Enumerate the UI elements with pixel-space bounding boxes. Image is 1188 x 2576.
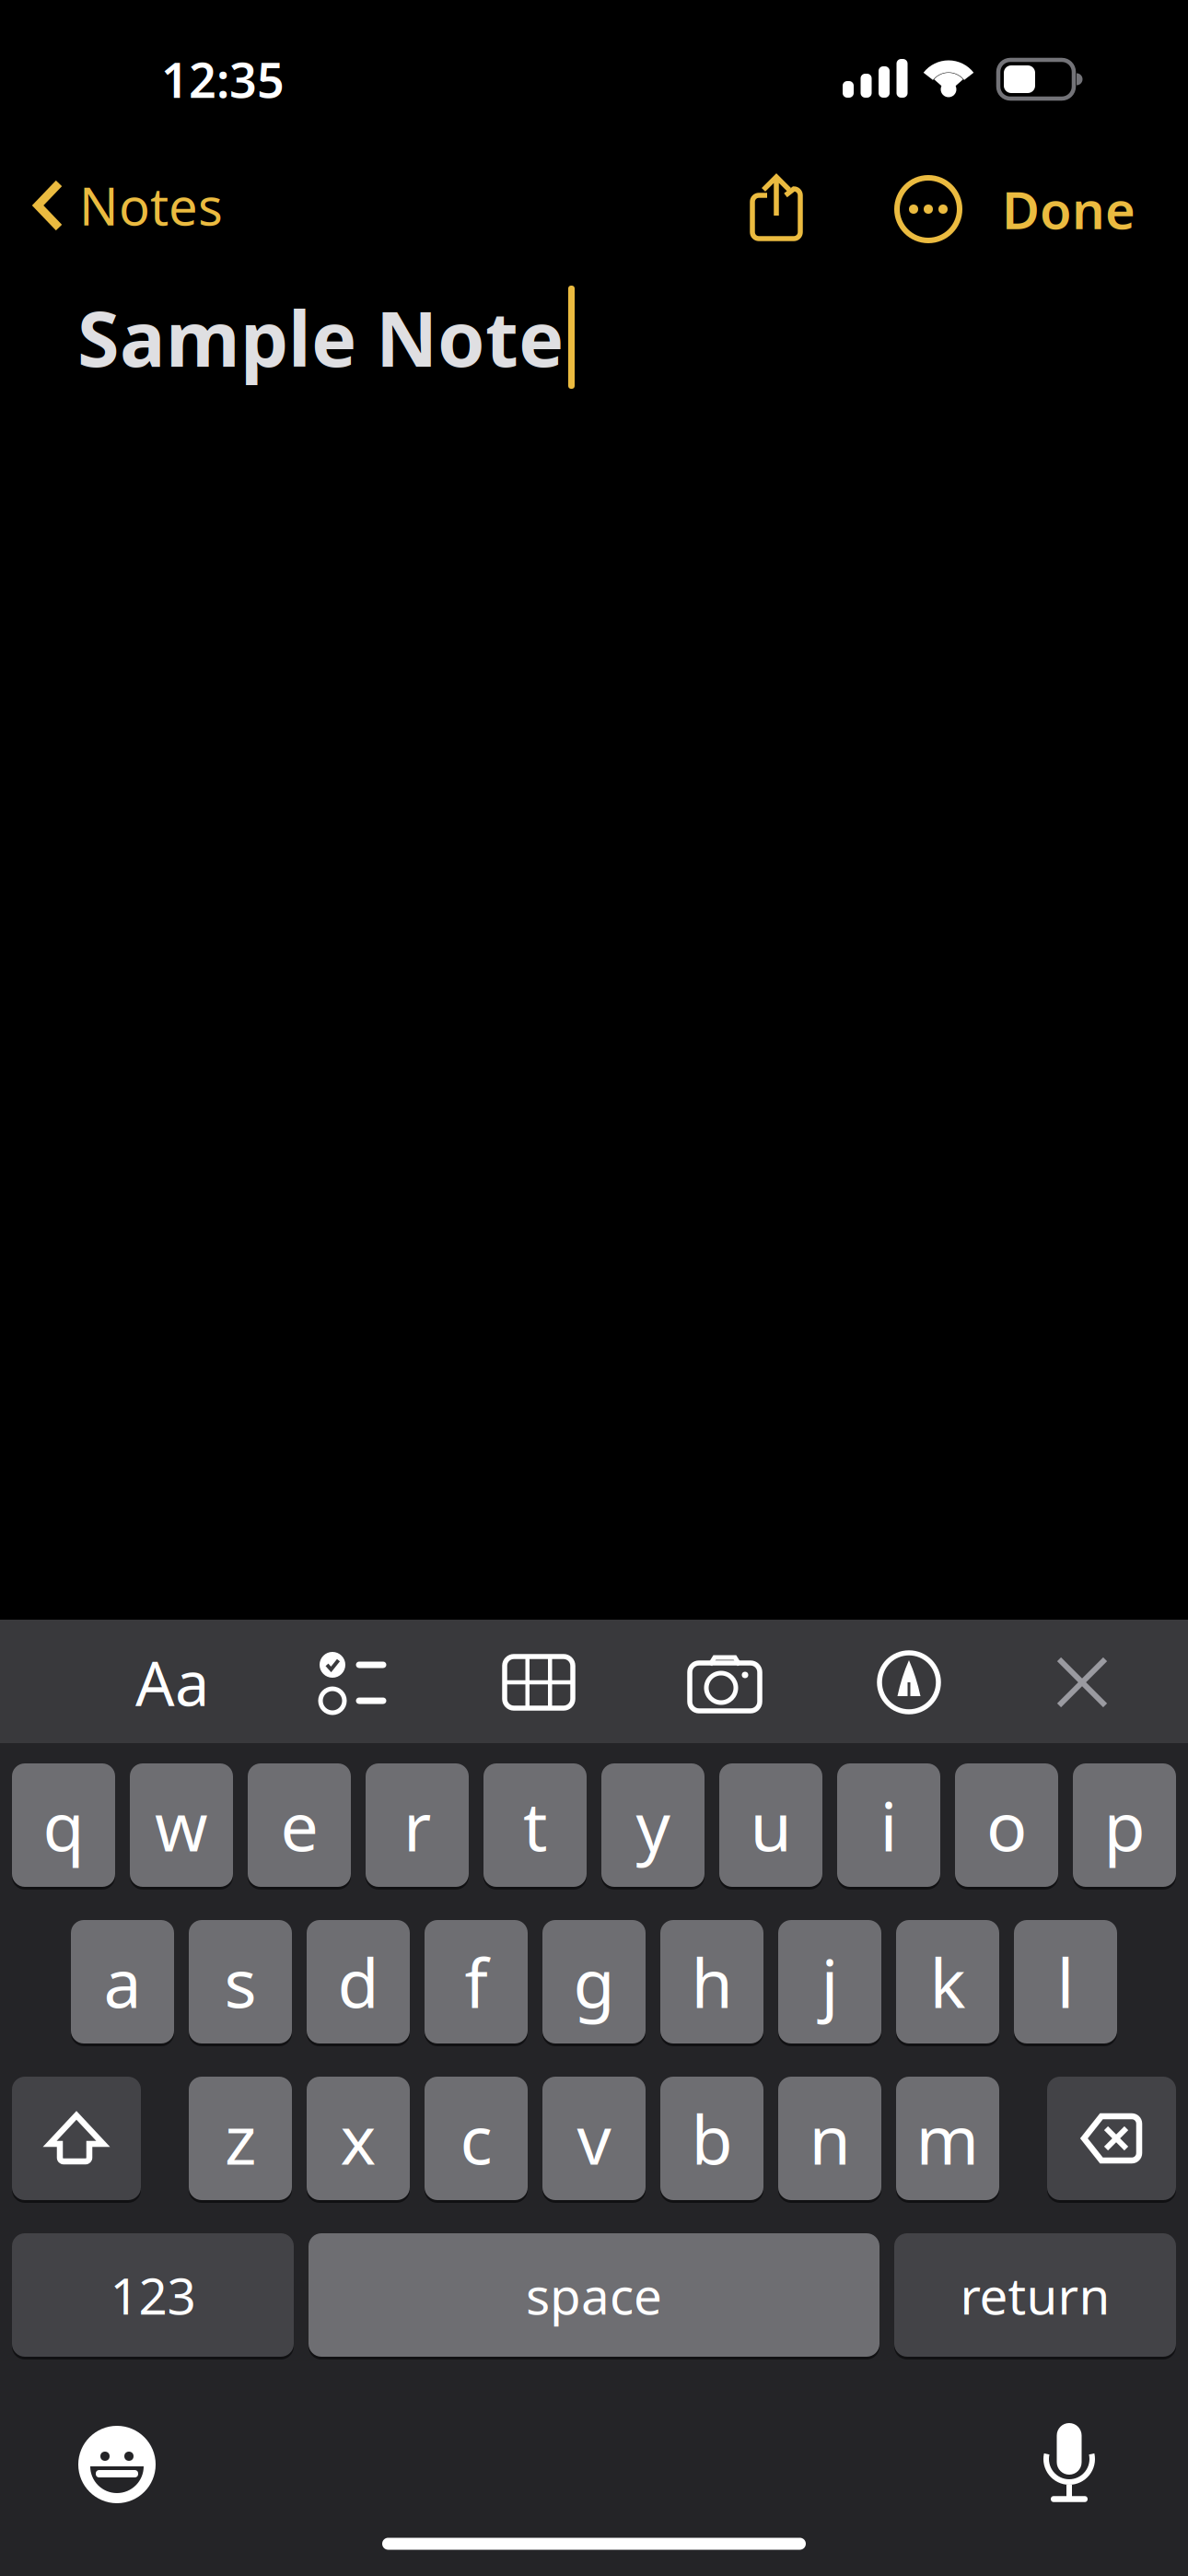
staticText: a [104,1937,141,2027]
button[interactable]: q [12,1762,115,1888]
button[interactable]: w [130,1762,233,1888]
button[interactable]: return [894,2232,1176,2358]
staticText: i [880,1780,897,1870]
button[interactable]: s [189,1919,292,2045]
staticText: q [43,1780,84,1870]
staticText: k [930,1937,966,2027]
staticText: b [691,2094,733,2183]
button[interactable]: Done [1002,176,1136,242]
staticText: o [986,1780,1027,1870]
staticText: l [1057,1937,1074,2027]
button[interactable]: x [307,2075,410,2201]
button[interactable]: Format [108,1621,237,1744]
button[interactable]: Delete [1047,2075,1176,2201]
staticText: 12:35 [161,47,285,111]
staticText: j [821,1937,839,2027]
staticText: space [526,2262,662,2328]
button[interactable]: Dictation [1042,2422,1097,2501]
button[interactable]: e [248,1762,351,1888]
staticText: c [460,2094,492,2183]
button[interactable]: f [425,1919,528,2045]
button[interactable]: Checklist [290,1621,419,1744]
staticText: d [338,1937,379,2027]
staticText: Notes [79,171,223,240]
button[interactable]: Share [747,173,806,243]
button[interactable]: n [778,2075,881,2201]
button[interactable]: z [189,2075,292,2201]
button[interactable]: Shift [12,2075,141,2201]
button[interactable]: Table [474,1621,603,1744]
button[interactable]: c [425,2075,528,2201]
staticText: g [573,1937,615,2027]
staticText: t [523,1780,547,1870]
button[interactable]: b [660,2075,763,2201]
staticText: Sample Note [77,287,564,388]
button[interactable]: o [955,1762,1058,1888]
button[interactable]: p [1073,1762,1176,1888]
button[interactable]: More [895,176,961,242]
button[interactable]: y [601,1762,705,1888]
button[interactable]: m [896,2075,999,2201]
staticText: y [636,1780,670,1870]
staticText: 123 [110,2262,196,2328]
button[interactable]: k [896,1919,999,2045]
button[interactable]: a [71,1919,174,2045]
staticText: z [225,2094,256,2183]
staticText: s [224,1937,256,2027]
button[interactable]: Dismiss keyboard [1027,1621,1137,1744]
staticText: f [465,1937,488,2027]
staticText: v [577,2094,611,2183]
button[interactable]: h [660,1919,763,2045]
button[interactable]: d [307,1919,410,2045]
staticText: x [340,2094,376,2183]
staticText: h [691,1937,733,2027]
button[interactable]: Camera [660,1621,789,1744]
button[interactable]: Emoji [78,2426,156,2503]
staticText: r [403,1780,431,1870]
staticText: e [280,1780,318,1870]
button[interactable]: v [542,2075,646,2201]
staticText: return [960,2262,1110,2328]
staticText: p [1104,1780,1145,1870]
staticText: Aa [135,1642,209,1723]
button[interactable]: 123 [12,2232,294,2358]
staticText: m [916,2094,979,2183]
staticText: u [750,1780,792,1870]
button[interactable]: r [366,1762,469,1888]
staticText: w [155,1780,208,1870]
button[interactable]: Markup [844,1621,973,1744]
button[interactable]: Back [33,172,223,239]
button[interactable]: j [778,1919,881,2045]
button[interactable]: g [542,1919,646,2045]
button[interactable]: i [837,1762,940,1888]
button[interactable]: t [483,1762,587,1888]
button[interactable]: l [1014,1919,1117,2045]
staticText: n [809,2094,850,2183]
button[interactable]: space [309,2232,879,2358]
button[interactable]: u [719,1762,822,1888]
staticText: Done [1002,175,1136,243]
